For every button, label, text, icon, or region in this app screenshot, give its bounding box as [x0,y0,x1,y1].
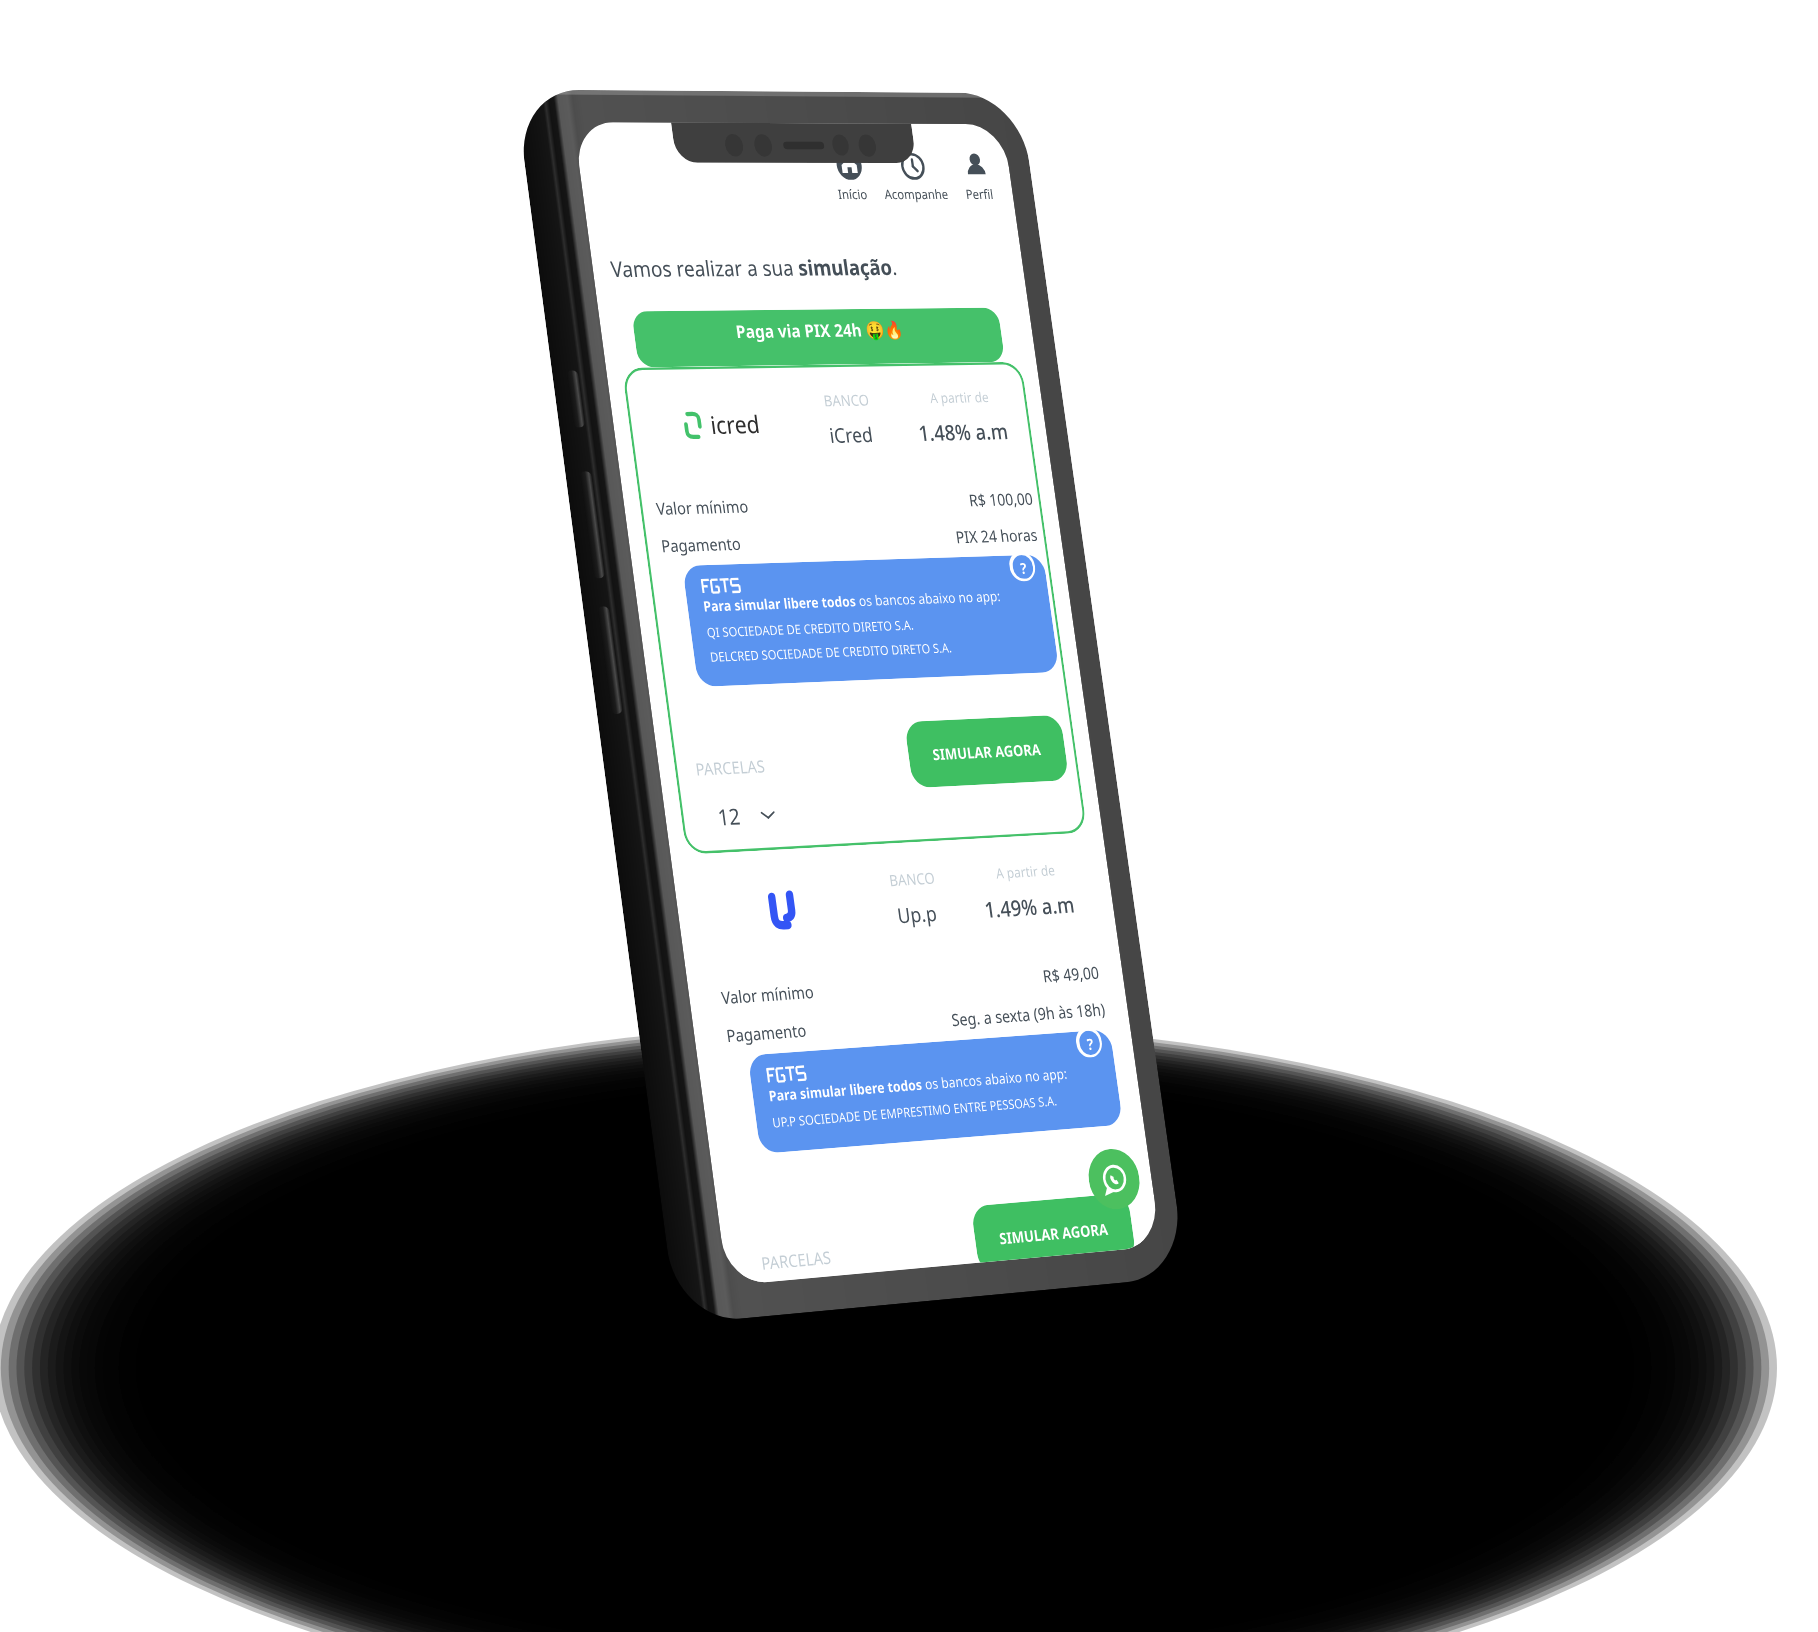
button[interactable]: SIMULAR AGORA [904,715,1069,788]
staticText: Perfil [965,185,995,203]
staticText: icred [708,408,762,442]
button[interactable]: Ajuda [1074,1026,1104,1058]
staticText: Pagamento [660,532,742,557]
staticText: SIMULAR AGORA [998,1218,1110,1248]
staticText: DELCRED SOCIEDADE DE CREDITO DIRETO S.A. [709,638,953,666]
staticText: Up.p [895,899,939,930]
staticText: ? [1019,557,1028,578]
staticText: A partir de [995,860,1056,882]
button[interactable]: WhatsApp [1085,1147,1143,1211]
staticText: Valor mínimo [720,980,815,1009]
button[interactable]: BANCO [686,833,1146,1284]
staticText: Valor mínimo [655,494,750,520]
staticText: Para simular libere todos os bancos abai… [767,1063,1069,1105]
button[interactable]: Paga via PIX 24h 🤑🔥 [631,307,1005,367]
staticText: Acompanhe [883,185,950,203]
staticText: SIMULAR AGORA [931,739,1043,764]
staticText: Vamos realizar a sua simulação. [609,252,899,283]
button[interactable]: SIMULAR AGORA [970,1193,1135,1263]
staticText: Paga via PIX 24h 🤑🔥 [734,317,905,343]
staticText: Para simular libere todos os bancos abai… [702,586,1002,615]
staticText: iCred [828,421,875,449]
button[interactable]: Acompanhe [876,151,952,203]
staticText: 12 [716,801,742,832]
staticText: 1.48% a.m [917,417,1011,447]
staticText: R$ 100,00 [967,487,1035,511]
other: Perfil [961,151,990,180]
staticText: Pagamento [725,1018,808,1047]
staticText: QI SOCIEDADE DE CREDITO DIRETO S.A. [706,616,915,641]
staticText: ? [1086,1033,1095,1054]
button[interactable]: Início [830,151,871,203]
staticText: Início [837,185,868,203]
staticText: PIX 24 horas [954,523,1040,548]
staticText: PARCELAS [760,1245,833,1275]
staticText: 1.49% a.m [983,889,1077,924]
staticText: UP.P SOCIEDADE DE EMPRESTIMO ENTRE PESSO… [771,1091,1058,1131]
staticText: R$ 49,00 [1041,961,1101,987]
staticText: BANCO [822,389,871,410]
button[interactable]: Ajuda [1007,551,1037,582]
button[interactable]: Perfil [958,151,997,203]
staticText: PARCELAS [694,754,767,781]
staticText: BANCO [888,867,937,890]
other: Início [834,151,864,180]
button[interactable]: icred [622,362,1087,855]
staticText: A partir de [929,387,990,407]
other: Acompanhe [898,151,928,180]
staticText: Seg. a sexta (9h às 18h) [950,997,1106,1031]
